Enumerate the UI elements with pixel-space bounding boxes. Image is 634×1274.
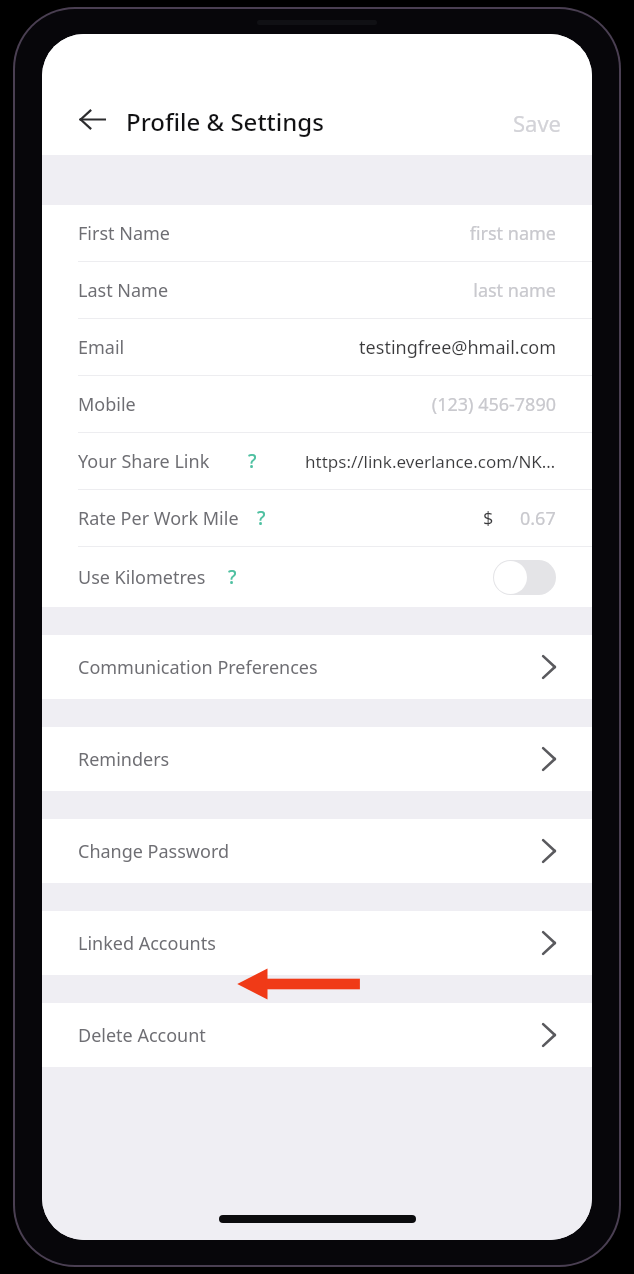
staticText: Reminders <box>78 747 170 772</box>
staticText: (123) 456-7890 <box>431 392 556 417</box>
button[interactable]: Delete Account <box>42 1003 592 1067</box>
staticText: $ <box>483 506 494 531</box>
staticText: Rate Per Work Mile <box>78 506 239 531</box>
button[interactable]: Save <box>513 108 562 138</box>
staticText: ? <box>257 505 266 531</box>
button[interactable]: Use Kilometres toggle <box>493 560 556 595</box>
staticText: ? <box>228 564 237 590</box>
button[interactable]: First Name <box>42 205 592 261</box>
staticText: Communication Preferences <box>78 655 318 680</box>
staticText: Last Name <box>78 278 169 303</box>
button[interactable]: Mobile <box>42 376 592 432</box>
staticText: Linked Accounts <box>78 931 216 956</box>
staticText: last name <box>473 278 556 303</box>
staticText: Save <box>513 108 562 138</box>
button[interactable]: Change Password <box>42 819 592 883</box>
button[interactable]: Communication Preferences <box>42 635 592 699</box>
staticText: Delete Account <box>78 1023 206 1048</box>
staticText: Change Password <box>78 839 230 864</box>
staticText: testingfree@hmail.com <box>359 335 556 360</box>
staticText: Mobile <box>78 392 136 417</box>
button[interactable]: Rate Per Work Mile <box>42 490 592 546</box>
button[interactable]: Linked Accounts <box>42 911 592 975</box>
staticText: 0.67 <box>520 506 556 531</box>
staticText: Use Kilometres <box>78 565 206 590</box>
staticText: https://link.everlance.com/NK… <box>305 450 556 473</box>
button[interactable]: Reminders <box>42 727 592 791</box>
staticText: ? <box>248 448 257 474</box>
staticText: Email <box>78 335 125 360</box>
button[interactable]: Email <box>42 319 592 375</box>
button[interactable]: Last Name <box>42 262 592 318</box>
button[interactable]: Back <box>70 97 114 141</box>
staticText: Your Share Link <box>78 449 210 474</box>
staticText: Profile & Settings <box>126 105 324 138</box>
staticText: First Name <box>78 221 170 246</box>
staticText: first name <box>469 221 556 246</box>
button[interactable]: Your Share Link <box>42 433 592 489</box>
